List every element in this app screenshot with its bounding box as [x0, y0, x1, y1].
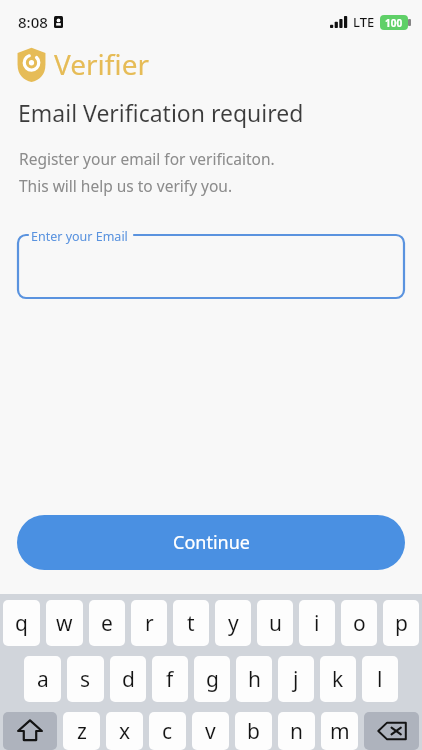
button[interactable]: w: [46, 600, 83, 646]
button[interactable]: q: [3, 600, 40, 646]
staticText: p: [395, 609, 408, 638]
staticText: j: [293, 665, 299, 694]
button[interactable]: Enter your Email: [17, 223, 405, 299]
staticText: Email Verification required: [18, 97, 304, 128]
button[interactable]: f: [152, 656, 188, 702]
button[interactable]: o: [341, 600, 377, 646]
staticText: l: [377, 665, 383, 694]
staticText: e: [101, 609, 113, 638]
button[interactable]: m: [321, 712, 358, 750]
button[interactable]: b: [235, 712, 272, 750]
button[interactable]: i: [299, 600, 335, 646]
staticText: h: [248, 665, 261, 694]
staticText: f: [166, 665, 174, 694]
button[interactable]: t: [173, 600, 209, 646]
staticText: r: [145, 609, 154, 638]
staticText: s: [80, 665, 91, 694]
staticText: c: [162, 717, 173, 746]
staticText: k: [332, 665, 344, 694]
staticText: d: [122, 665, 135, 694]
staticText: Verifier: [54, 45, 150, 83]
staticText: o: [353, 609, 366, 638]
button[interactable]: s: [67, 656, 104, 702]
staticText: Continue: [173, 530, 250, 555]
staticText: Register your email for verificaiton.: [19, 148, 275, 169]
staticText: b: [247, 717, 260, 746]
staticText: y: [228, 609, 239, 638]
staticText: LTE: [353, 13, 375, 31]
button[interactable]: p: [383, 600, 419, 646]
button[interactable]: g: [194, 656, 230, 702]
button[interactable]: n: [278, 712, 315, 750]
button[interactable]: k: [320, 656, 356, 702]
button[interactable]: d: [110, 656, 146, 702]
staticText: This will help us to verify you.: [19, 175, 233, 196]
staticText: 8:08: [18, 12, 48, 32]
button[interactable]: j: [278, 656, 314, 702]
staticText: z: [77, 717, 87, 746]
button[interactable]: e: [89, 600, 125, 646]
button[interactable]: v: [192, 712, 229, 750]
button[interactable]: x: [106, 712, 143, 750]
staticText: m: [330, 717, 350, 746]
button[interactable]: a: [24, 656, 61, 702]
button[interactable]: z: [63, 712, 100, 750]
staticText: g: [206, 665, 219, 694]
staticText: t: [187, 609, 195, 638]
staticText: u: [269, 609, 282, 638]
button[interactable]: Continue: [17, 515, 405, 570]
button[interactable]: Backspace: [364, 712, 419, 750]
button[interactable]: h: [236, 656, 272, 702]
staticText: n: [290, 717, 303, 746]
button[interactable]: Shift: [3, 712, 57, 750]
button[interactable]: y: [215, 600, 251, 646]
staticText: x: [119, 717, 131, 746]
staticText: Enter your Email: [31, 228, 128, 245]
staticText: v: [205, 717, 216, 746]
button[interactable]: r: [131, 600, 167, 646]
button[interactable]: l: [362, 656, 398, 702]
button[interactable]: u: [257, 600, 293, 646]
staticText: a: [37, 665, 49, 694]
staticText: i: [314, 609, 320, 638]
staticText: 100: [385, 16, 403, 30]
button[interactable]: c: [149, 712, 186, 750]
staticText: w: [56, 609, 73, 638]
staticText: q: [15, 609, 28, 638]
